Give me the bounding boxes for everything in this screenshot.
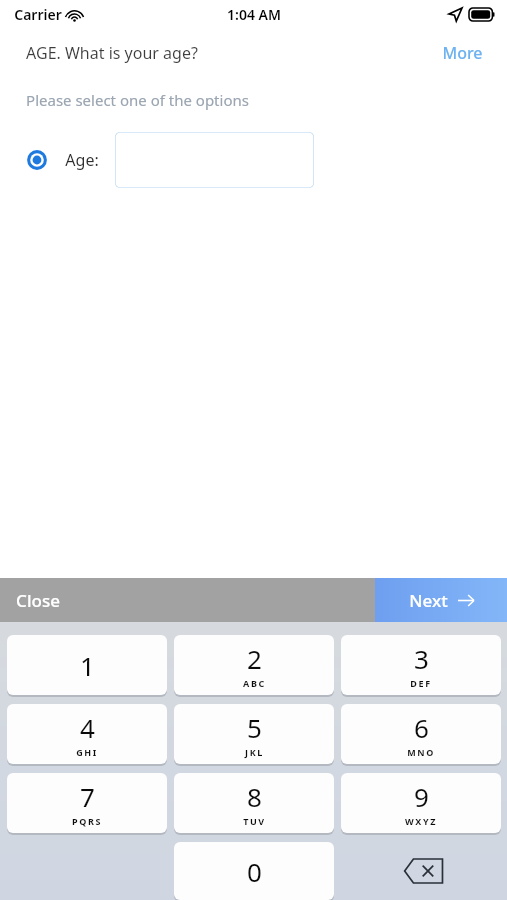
staticText: JKL [245,746,264,758]
button[interactable]: 0 [174,842,334,900]
staticText: DEF [410,677,432,689]
staticText: 4 [80,710,95,745]
button[interactable]: 7 [7,773,167,833]
staticText: Close [16,589,60,612]
button[interactable]: 4 [7,704,167,764]
staticText: 6 [414,710,429,745]
button[interactable]: More [436,38,489,68]
staticText: Carrier [14,5,62,24]
staticText: AGE. What is your age? [26,42,198,64]
button[interactable]: 8 [174,773,334,833]
button[interactable]: Age: [26,132,507,188]
staticText: 9 [414,779,429,814]
staticText: ABC [243,677,266,689]
button[interactable]: 2 [174,635,334,695]
button[interactable]: 6 [341,704,501,764]
staticText: MNO [407,746,435,758]
staticText: 1:04 AM [227,5,281,24]
staticText: 8 [247,779,262,814]
button[interactable] [115,132,314,188]
staticText: 5 [247,710,262,745]
button[interactable]: Close [0,578,375,622]
staticText: Please select one of the options [26,90,249,110]
staticText: 2 [247,641,262,676]
staticText: Age: [65,149,99,171]
button[interactable]: Delete [374,842,474,900]
staticText: GHI [76,746,98,758]
staticText: WXYZ [405,815,437,827]
staticText: 3 [414,641,429,676]
button[interactable]: 9 [341,773,501,833]
staticText: More [442,42,483,64]
staticText: 7 [80,779,95,814]
staticText: TUV [243,815,266,827]
staticText: 0 [247,854,262,889]
staticText: PQRS [72,815,102,827]
button[interactable]: 5 [174,704,334,764]
staticText: 1 [80,648,95,683]
button[interactable]: 1 [7,635,167,695]
button[interactable]: Next [375,578,507,622]
button[interactable]: 3 [341,635,501,695]
staticText: Next [409,589,448,612]
